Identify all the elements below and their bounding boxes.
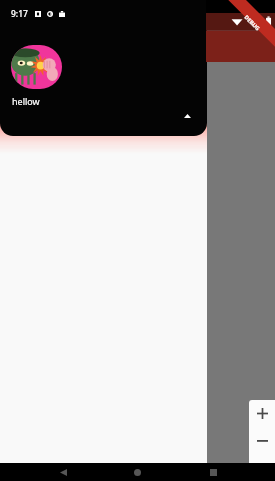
- staticText: hellow: [12, 95, 40, 107]
- button[interactable]: 1:1: [249, 454, 275, 481]
- button[interactable]: Collapse: [177, 108, 197, 124]
- button[interactable]: Profile picture: [11, 45, 62, 89]
- button[interactable]: Home: [126, 463, 148, 481]
- staticText: DEBUG: [243, 13, 262, 32]
- staticText: 1:1: [256, 462, 269, 474]
- button[interactable]: Zoom out: [249, 427, 275, 454]
- staticText: 9:17: [11, 8, 28, 20]
- button[interactable]: Zoom in: [249, 400, 275, 427]
- button[interactable]: Back: [52, 463, 74, 481]
- button[interactable]: Recent apps: [202, 463, 224, 481]
